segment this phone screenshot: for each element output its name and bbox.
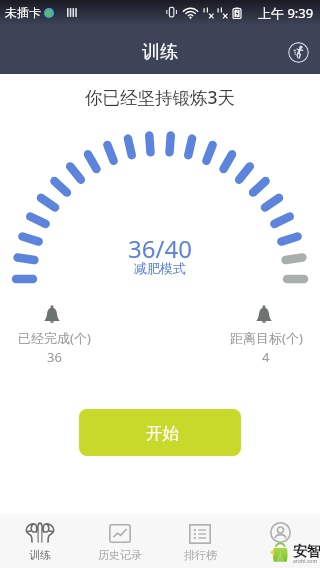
staticText: 已经完成(个) xyxy=(18,329,91,347)
button[interactable]: 排行榜 xyxy=(160,514,240,568)
button[interactable]: 训练模式 xyxy=(288,42,309,63)
button[interactable]: 我 xyxy=(240,514,320,568)
staticText: 历史记录 xyxy=(98,548,142,562)
staticText: 距离目标(个) xyxy=(230,329,303,347)
staticText: 你已经坚持锻炼3天 xyxy=(0,85,320,109)
staticText: 我 xyxy=(275,548,286,562)
staticText: 训练 xyxy=(142,41,178,64)
staticText: anzhi.com xyxy=(293,558,318,565)
staticText: 上午 9:39 xyxy=(258,4,314,22)
staticText: 36/40 xyxy=(0,232,320,265)
staticText: 36 xyxy=(47,348,62,366)
staticText: 减肥模式 xyxy=(0,260,320,276)
staticText: 未插卡 xyxy=(5,5,41,20)
button[interactable]: 开始 xyxy=(79,409,241,456)
staticText: 安智 xyxy=(293,543,320,561)
button[interactable]: 历史记录 xyxy=(80,514,160,568)
staticText: 训练 xyxy=(29,548,51,562)
button[interactable]: 训练 xyxy=(0,514,80,568)
staticText: 4 xyxy=(262,348,270,366)
staticText: 开始 xyxy=(146,423,179,444)
staticText: 排行榜 xyxy=(184,548,217,562)
